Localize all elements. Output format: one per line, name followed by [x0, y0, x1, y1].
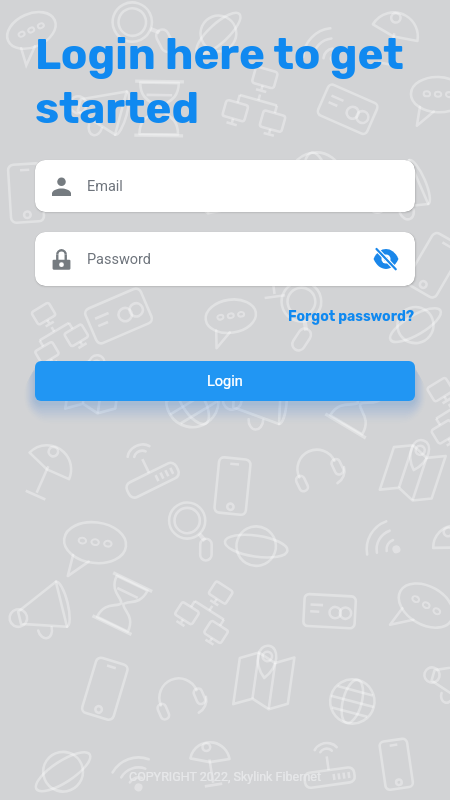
button[interactable]: Show password — [366, 239, 406, 279]
button[interactable]: Login — [35, 361, 415, 401]
staticText: Login — [207, 373, 243, 390]
staticText: COPYRIGHT 2022, Skylink Fibernet — [129, 769, 322, 784]
button[interactable]: Forgot password? — [288, 308, 415, 325]
staticText: Password — [87, 251, 152, 268]
staticText: Email — [87, 178, 123, 195]
staticText: Login here to get started — [35, 28, 420, 134]
button[interactable]: Password — [35, 232, 415, 286]
button[interactable]: Email — [35, 160, 415, 212]
